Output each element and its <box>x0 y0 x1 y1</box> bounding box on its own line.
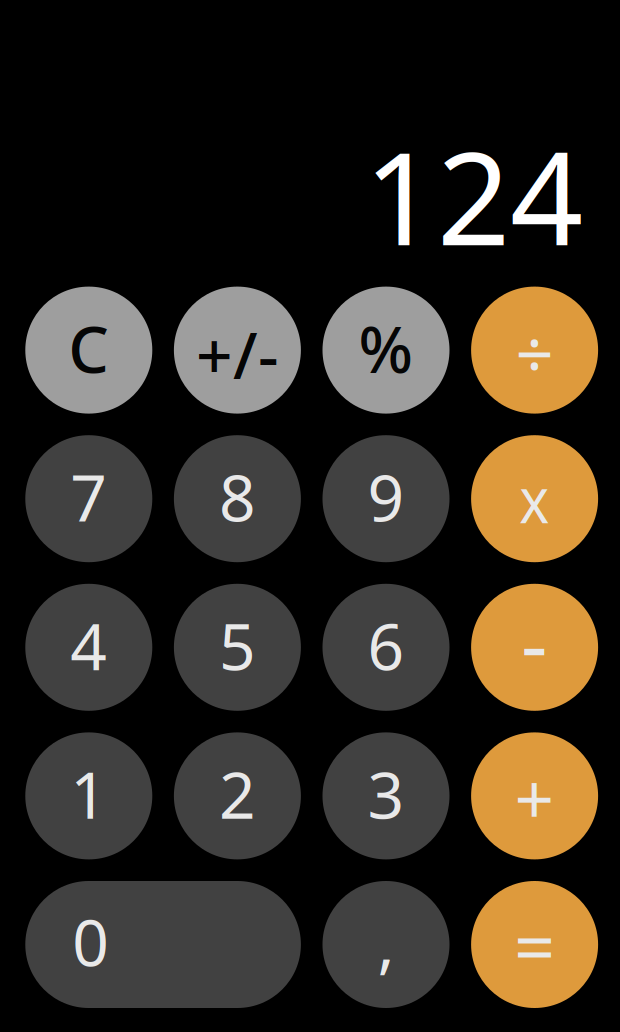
button[interactable]: 4 <box>25 584 152 711</box>
button[interactable]: 7 <box>25 435 152 562</box>
staticText: % <box>358 306 413 391</box>
staticText: , <box>377 900 394 985</box>
staticText: ÷ <box>516 308 554 397</box>
button[interactable]: Decimal separator <box>322 881 449 1008</box>
button[interactable]: 6 <box>322 584 449 711</box>
staticText: + <box>515 752 555 844</box>
staticText: 6 <box>367 603 404 688</box>
staticText: 7 <box>70 454 107 539</box>
staticText: - <box>521 587 548 697</box>
staticText: 0 <box>72 899 109 984</box>
button[interactable]: 0 <box>25 881 301 1008</box>
button[interactable]: Multiply <box>471 435 598 562</box>
staticText: 1 <box>70 751 107 836</box>
staticText: 124 <box>364 111 583 281</box>
button[interactable]: 8 <box>174 435 301 562</box>
staticText: +/- <box>196 312 279 397</box>
staticText: 8 <box>219 454 256 539</box>
button[interactable]: Plus minus <box>174 287 301 414</box>
button[interactable]: 2 <box>174 732 301 859</box>
staticText: 4 <box>70 603 107 688</box>
button[interactable]: Percent <box>322 287 449 414</box>
staticText: X <box>520 474 549 536</box>
staticText: 3 <box>367 751 404 836</box>
button[interactable]: Divide <box>471 287 598 414</box>
staticText: = <box>514 898 555 993</box>
staticText: 2 <box>219 751 256 836</box>
staticText: 9 <box>367 454 404 539</box>
button[interactable]: Equals <box>471 881 598 1008</box>
button[interactable]: Plus <box>471 732 598 859</box>
button[interactable]: Minus <box>471 584 598 711</box>
button[interactable]: 5 <box>174 584 301 711</box>
staticText: 5 <box>219 603 256 688</box>
button[interactable]: 1 <box>25 732 152 859</box>
staticText: C <box>68 306 109 391</box>
button[interactable]: 9 <box>322 435 449 562</box>
button[interactable]: 3 <box>322 732 449 859</box>
button[interactable]: Clear <box>25 287 152 414</box>
